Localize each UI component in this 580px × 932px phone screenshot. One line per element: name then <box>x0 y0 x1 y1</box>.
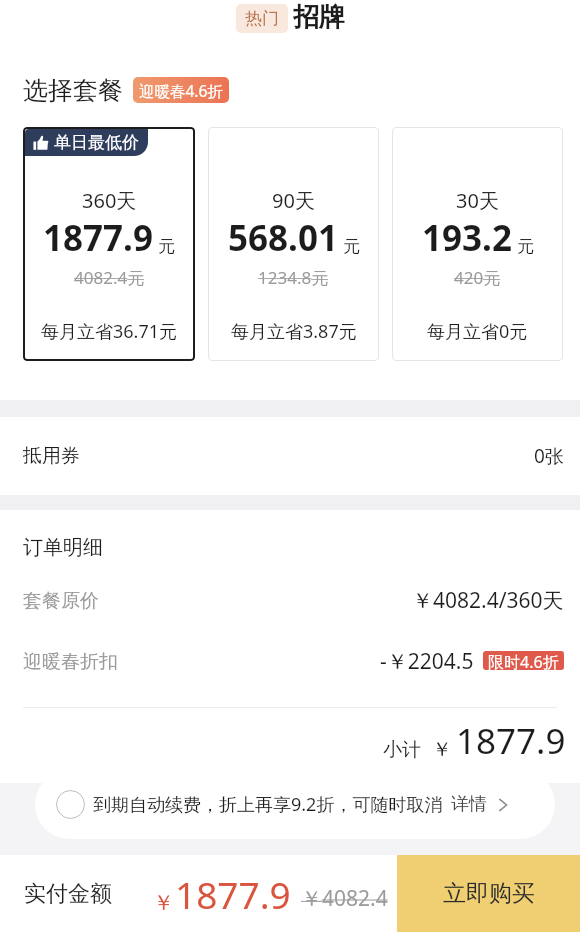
staticText: -￥2204.5 <box>380 647 474 676</box>
staticText: 每月立省3.87元 <box>231 319 357 344</box>
staticText: ￥4082.4/360天 <box>412 586 564 615</box>
staticText: 抵用券 <box>23 444 80 468</box>
button[interactable]: 到期自动续费，折上再享9.2折，可随时取消 <box>35 770 555 839</box>
staticText: 立即购买 <box>443 879 535 908</box>
staticText: 每月立省0元 <box>427 319 528 344</box>
staticText: 193.2 <box>422 214 512 262</box>
staticText: 迎暖春折扣 <box>23 650 118 674</box>
staticText: 元 <box>517 236 534 257</box>
staticText: 热门 <box>245 8 279 29</box>
staticText: 迎暖春4.6折 <box>139 80 223 101</box>
staticText: ￥4082.4 <box>301 884 388 913</box>
staticText: 套餐原价 <box>23 589 99 613</box>
button[interactable]: 360天 <box>23 127 195 361</box>
staticText: 选择套餐 <box>23 75 123 106</box>
staticText: 元 <box>158 236 175 257</box>
staticText: 360天 <box>82 187 137 214</box>
button[interactable]: 90天 <box>208 127 379 361</box>
staticText: 招牌 <box>293 1 345 34</box>
button[interactable]: 立即购买 <box>397 855 580 932</box>
staticText: 90天 <box>272 187 315 214</box>
staticText: 到期自动续费，折上再享9.2折，可随时取消 <box>93 792 443 817</box>
staticText: ￥ <box>153 890 174 916</box>
button[interactable]: 30天 <box>392 127 563 361</box>
staticText: 小计 <box>383 738 421 762</box>
staticText: 每月立省36.71元 <box>41 319 178 344</box>
staticText: 1877.9 <box>43 214 153 262</box>
staticText: 0张 <box>534 443 564 469</box>
staticText: 1877.9 <box>175 869 291 919</box>
staticText: 单日最低价 <box>54 132 139 153</box>
staticText: 568.01 <box>228 214 338 262</box>
staticText: 420元 <box>454 266 501 289</box>
button[interactable]: 抵用券 <box>0 417 580 495</box>
staticText: 1877.9 <box>456 717 566 765</box>
staticText: 实付金额 <box>24 880 112 908</box>
staticText: 详情 <box>451 793 487 816</box>
staticText: 30天 <box>456 187 499 214</box>
staticText: 元 <box>343 236 360 257</box>
staticText: 4082.4元 <box>74 266 145 289</box>
staticText: 订单明细 <box>23 535 103 560</box>
other: 详情 <box>495 797 511 813</box>
staticText: 1234.8元 <box>258 266 329 289</box>
staticText: 限时4.6折 <box>488 651 559 670</box>
staticText: ￥ <box>432 737 452 762</box>
